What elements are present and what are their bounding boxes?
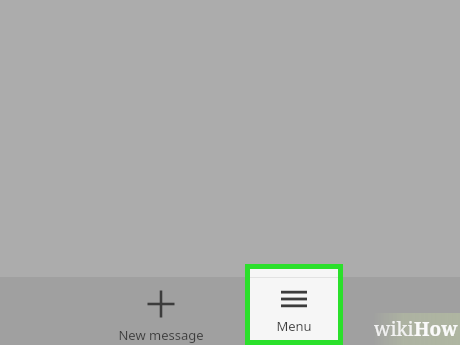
- staticText: New message: [118, 326, 204, 344]
- staticText: How: [414, 316, 458, 342]
- button[interactable]: New message: [101, 278, 221, 345]
- button[interactable]: Menu: [245, 264, 343, 345]
- staticText: Menu: [276, 317, 312, 335]
- staticText: wiki: [374, 316, 414, 342]
